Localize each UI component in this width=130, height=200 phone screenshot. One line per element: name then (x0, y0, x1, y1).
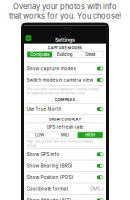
staticText: that works for you. You choose! (9, 11, 121, 21)
staticText: Overlay your photos with info (13, 2, 117, 11)
button[interactable]: Show Position (POS) (24, 172, 106, 183)
staticText: Show Altitude (ALT) (27, 197, 72, 200)
staticText: Switch modes in camera view (27, 77, 93, 83)
button[interactable]: MID (52, 132, 78, 138)
staticText: MID (61, 132, 69, 137)
button[interactable]: Use True North (24, 103, 106, 114)
staticText: Use True North (27, 106, 62, 112)
staticText: Building (57, 52, 73, 57)
button[interactable]: App icon (25, 35, 31, 41)
staticText: You can also switch between capture mode… (27, 87, 100, 95)
staticText: › (101, 185, 103, 192)
button[interactable]: Street (78, 51, 103, 58)
staticText: GPS refresh rate (46, 124, 83, 130)
button[interactable]: Coordinate format (24, 183, 106, 194)
staticText: DMS (90, 186, 100, 192)
staticText: Show capture modes (27, 66, 76, 71)
staticText: High GPS refresh rate will increase batt… (27, 139, 94, 147)
staticText: UPDATE DISPLAY (48, 117, 81, 121)
staticText: HIGH (85, 132, 95, 137)
button[interactable]: Show capture modes (24, 63, 106, 74)
staticText: Street (85, 52, 95, 57)
staticText: Coordinate format (27, 186, 69, 192)
button[interactable]: HIGH (78, 132, 103, 138)
button[interactable]: Show Altitude (ALT) (24, 195, 106, 200)
staticText: Show Bearing (BRG) (27, 163, 73, 169)
staticText: Show GPS info (27, 151, 60, 157)
staticText: Show Position (POS) (27, 174, 74, 180)
button[interactable]: Compass (27, 51, 52, 58)
button[interactable]: Show Bearing (BRG) (24, 160, 106, 171)
staticText: Compass (30, 52, 49, 57)
staticText: COMPASS (54, 97, 75, 102)
button[interactable]: Building (52, 51, 78, 58)
button[interactable]: Show GPS info (24, 149, 106, 160)
button[interactable]: Switch modes in camera view (24, 74, 106, 85)
staticText: Settings (55, 37, 75, 43)
staticText: CAPTURE MODES (47, 46, 82, 50)
staticText: LOW (35, 132, 44, 137)
button[interactable]: LOW (27, 132, 52, 138)
